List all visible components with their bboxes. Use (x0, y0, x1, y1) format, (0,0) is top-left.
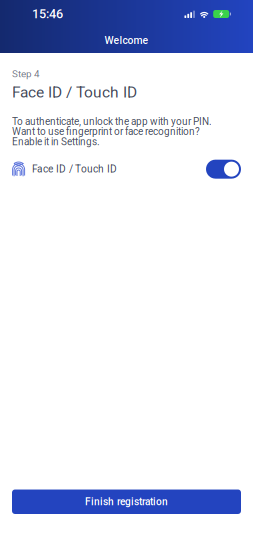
staticText: Step 4 (12, 68, 40, 80)
staticText: Face ID / Touch ID (12, 83, 137, 101)
staticText: Enable it in Settings. (12, 136, 100, 148)
button[interactable]: Finish registration (12, 489, 241, 514)
staticText: Face ID / Touch ID (32, 163, 117, 175)
staticText: To authenticate, unlock the app with you… (12, 116, 212, 127)
staticText: Want to use fingerprint or face recognit… (12, 126, 200, 137)
staticText: Finish registration (85, 496, 168, 508)
staticText: 15:46 (32, 7, 63, 21)
staticText: Welcome (104, 34, 148, 47)
